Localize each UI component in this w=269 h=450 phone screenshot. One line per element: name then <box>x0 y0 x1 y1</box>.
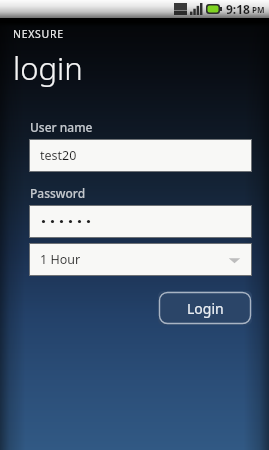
staticText: User name <box>30 119 93 135</box>
staticText: Password <box>30 185 86 201</box>
other: Signal <box>190 3 203 15</box>
staticText: Login <box>187 299 224 318</box>
staticText: test20 <box>40 147 77 164</box>
staticText: NEXSURE <box>13 27 64 41</box>
button[interactable]: Login <box>158 291 252 325</box>
other: 3G <box>174 3 187 15</box>
other: Battery <box>206 4 222 14</box>
button[interactable]: Session duration <box>30 244 251 275</box>
button[interactable]: test20 <box>30 140 251 171</box>
staticText: 1 Hour <box>40 251 228 268</box>
staticText: login <box>13 47 83 89</box>
staticText: 9:18 <box>226 1 250 17</box>
button[interactable] <box>30 206 251 237</box>
staticText: PM <box>252 4 265 15</box>
